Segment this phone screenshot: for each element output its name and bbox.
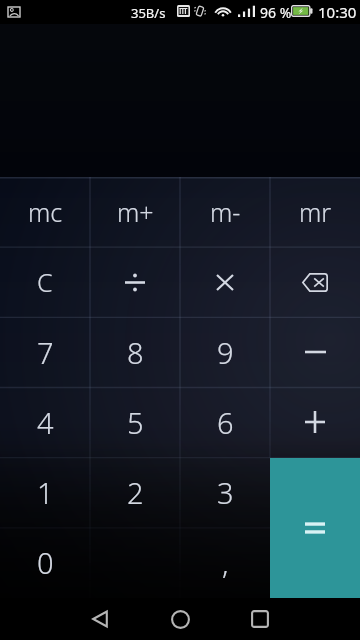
button[interactable]: m- — [180, 177, 270, 247]
staticText: m+ — [117, 195, 154, 229]
button[interactable]: Backspace — [270, 247, 360, 317]
staticText: 3 — [217, 473, 234, 512]
button[interactable]: C — [0, 247, 90, 317]
staticText: 8 — [127, 333, 144, 372]
staticText: 5 — [127, 403, 144, 442]
button[interactable]: Multiply — [180, 247, 270, 317]
staticText: 7 — [37, 333, 54, 372]
staticText: 96 % — [260, 3, 292, 22]
button[interactable]: 7 — [0, 317, 90, 387]
staticText: 10:30 — [318, 2, 357, 22]
staticText: 4 — [37, 403, 54, 442]
button[interactable]: Minus — [270, 317, 360, 387]
button[interactable]: 8 — [90, 317, 180, 387]
button[interactable]: 6 — [180, 387, 270, 457]
staticText: C — [37, 265, 53, 299]
button[interactable]: Home — [150, 598, 210, 640]
staticText: m- — [210, 195, 241, 229]
button[interactable]: 4 — [0, 387, 90, 457]
button[interactable]: 3 — [180, 457, 270, 527]
staticText: 1 — [37, 473, 54, 512]
button[interactable]: Comma — [180, 527, 270, 597]
staticText: mc — [28, 195, 63, 229]
button[interactable]: m+ — [90, 177, 180, 247]
staticText: 35B/s — [131, 4, 166, 22]
button[interactable]: 5 — [90, 387, 180, 457]
staticText: 6 — [217, 403, 234, 442]
button[interactable]: Back — [70, 598, 130, 640]
button[interactable]: mc — [0, 177, 90, 247]
staticText: 0 — [37, 543, 54, 582]
button[interactable]: Plus — [270, 387, 360, 457]
button[interactable]: mr — [270, 177, 360, 247]
button[interactable]: 9 — [180, 317, 270, 387]
staticText: 2 — [127, 473, 144, 512]
button[interactable]: Divide — [90, 247, 180, 317]
staticText: 9 — [217, 333, 234, 372]
staticText: , — [222, 543, 229, 582]
button[interactable]: Equals — [270, 458, 360, 598]
button[interactable]: 0 — [0, 527, 90, 597]
staticText: mr — [299, 195, 332, 229]
button[interactable]: 1 — [0, 457, 90, 527]
button[interactable]: Recents — [230, 598, 290, 640]
button[interactable]: 2 — [90, 457, 180, 527]
